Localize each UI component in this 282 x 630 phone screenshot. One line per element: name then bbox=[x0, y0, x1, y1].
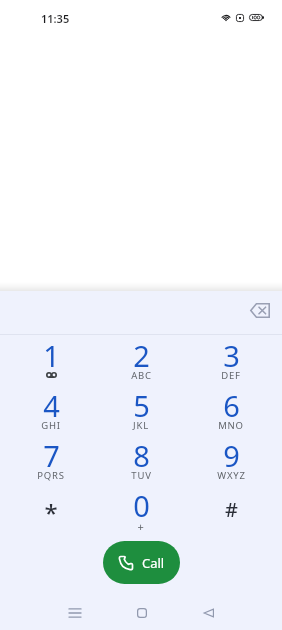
button[interactable]: Recent apps bbox=[41, 595, 108, 630]
button[interactable]: Home bbox=[108, 595, 175, 630]
staticText: + bbox=[137, 519, 145, 534]
button[interactable]: Back bbox=[175, 595, 242, 630]
button[interactable]: 1 bbox=[6, 335, 96, 385]
button[interactable]: 9 bbox=[186, 435, 276, 485]
staticText: # bbox=[225, 496, 238, 523]
button[interactable]: 5 bbox=[96, 385, 186, 435]
button[interactable]: 3 bbox=[186, 335, 276, 385]
button[interactable]: 6 bbox=[186, 385, 276, 435]
button[interactable]: 7 bbox=[6, 435, 96, 485]
staticText: 7 bbox=[43, 436, 60, 475]
button[interactable]: Call bbox=[103, 541, 180, 584]
button[interactable]: 0 bbox=[96, 485, 186, 535]
staticText: 9 bbox=[223, 436, 240, 475]
button[interactable]: 2 bbox=[96, 335, 186, 385]
button[interactable]: # bbox=[186, 485, 276, 535]
button[interactable]: 4 bbox=[6, 385, 96, 435]
staticText: DEF bbox=[221, 369, 241, 382]
button[interactable]: 8 bbox=[96, 435, 186, 485]
staticText: 2 bbox=[133, 336, 150, 375]
staticText: 5 bbox=[133, 386, 150, 425]
staticText: 4 bbox=[43, 386, 60, 425]
staticText: Call bbox=[142, 554, 165, 572]
button[interactable]: Backspace bbox=[242, 292, 278, 328]
staticText: TUV bbox=[131, 469, 152, 482]
staticText: JKL bbox=[133, 419, 149, 432]
staticText: GHI bbox=[41, 419, 61, 432]
staticText: * bbox=[44, 496, 58, 529]
staticText: 11:35 bbox=[41, 11, 70, 26]
staticText: 3 bbox=[223, 336, 240, 375]
staticText: 8 bbox=[133, 436, 150, 475]
staticText: PQRS bbox=[37, 469, 65, 482]
staticText: WXYZ bbox=[217, 469, 246, 482]
button[interactable]: * bbox=[6, 485, 96, 535]
staticText: 6 bbox=[223, 386, 240, 425]
staticText: MNO bbox=[218, 419, 244, 432]
staticText: ABC bbox=[131, 369, 152, 382]
staticText: 0 bbox=[133, 486, 150, 525]
staticText: 1 bbox=[43, 336, 60, 375]
